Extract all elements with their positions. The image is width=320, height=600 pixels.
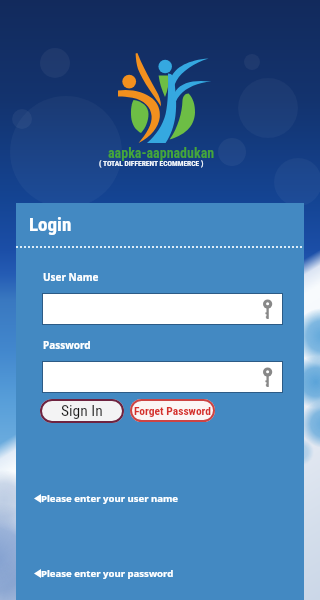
staticText: Password: [43, 338, 91, 352]
staticText: Login: [29, 213, 72, 235]
button[interactable]: Key: [42, 293, 283, 325]
other: Key: [263, 367, 274, 388]
staticText: Sign In: [61, 402, 103, 420]
staticText: Forget Password: [134, 404, 212, 417]
staticText: ( TOTAL DIFFERENT ECOMMERCE ): [99, 159, 204, 168]
button[interactable]: Sign In: [40, 399, 124, 423]
button[interactable]: Key: [42, 361, 283, 393]
other: Key: [263, 299, 274, 320]
staticText: aapka-aapnadukan: [108, 145, 215, 161]
staticText: User Name: [43, 270, 99, 284]
staticText: Please enter your password: [41, 567, 174, 580]
staticText: Please enter your user name: [41, 492, 179, 505]
button[interactable]: Forget Password: [130, 399, 215, 422]
